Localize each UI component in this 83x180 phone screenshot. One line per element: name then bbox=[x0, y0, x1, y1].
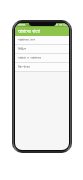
staticText: কিশোরের bbox=[18, 65, 30, 69]
button[interactable]: আমরা ও আমাদের bbox=[15, 54, 69, 62]
button[interactable]: আমাদের বাংলা bbox=[15, 27, 69, 36]
other: Status bar bbox=[15, 23, 69, 27]
staticText: আমাদের বাংলা bbox=[18, 28, 41, 35]
button[interactable]: আমাদের দেশ bbox=[15, 36, 69, 44]
staticText: আমরা ও আমাদের bbox=[18, 55, 41, 61]
other: Notch bbox=[29, 22, 56, 26]
button[interactable]: মিছিল bbox=[15, 45, 69, 53]
staticText: মিছিল bbox=[18, 47, 26, 51]
button[interactable]: কিশোরের bbox=[15, 63, 69, 71]
staticText: আমাদের দেশ bbox=[18, 37, 35, 43]
